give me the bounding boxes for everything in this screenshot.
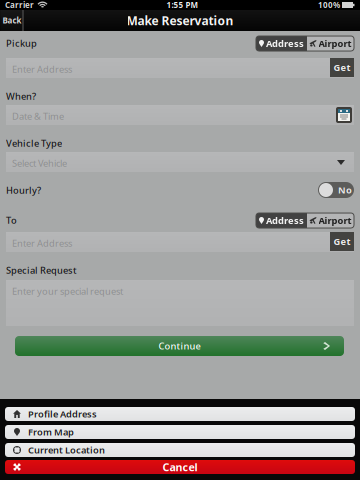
staticText: From Map (28, 426, 74, 438)
staticText: Carrier (5, 0, 34, 10)
staticText: Get (333, 61, 350, 74)
button[interactable]: Back (0, 10, 24, 31)
staticText: Address (266, 37, 304, 50)
staticText: Hourly? (6, 184, 41, 196)
staticText: Profile Address (28, 408, 97, 420)
button[interactable]: Select Vehicle (6, 152, 354, 172)
button[interactable]: Profile Address (5, 407, 355, 421)
staticText: Airport (318, 214, 351, 227)
staticText: Cancel (162, 460, 197, 474)
staticText: Get (333, 235, 350, 248)
staticText: When? (6, 90, 36, 102)
staticText: Select Vehicle (12, 157, 67, 169)
button[interactable]: Get (330, 232, 354, 251)
staticText: 1:55 PM (166, 0, 198, 10)
button[interactable]: Airport (307, 213, 354, 228)
button[interactable]: Continue (15, 336, 344, 356)
button[interactable]: Airport (307, 36, 354, 51)
staticText: Back (2, 15, 21, 26)
button[interactable]: Address (256, 36, 307, 51)
button[interactable]: Cancel (5, 460, 355, 474)
staticText: Pickup (6, 37, 37, 49)
staticText: Enter Address (12, 63, 72, 75)
staticText: Continue (158, 340, 200, 352)
button[interactable]: Get (330, 58, 354, 77)
button[interactable]: From Map (5, 425, 355, 439)
button[interactable]: No (318, 182, 354, 198)
staticText: Enter Address (12, 237, 72, 249)
staticText: Airport (318, 37, 351, 50)
staticText: To (6, 214, 17, 226)
staticText: Vehicle Type (6, 137, 62, 149)
staticText: Make Reservation (126, 12, 233, 28)
button[interactable]: Choose date and time (336, 107, 352, 123)
button[interactable]: Address (256, 213, 307, 228)
staticText: No (338, 184, 352, 196)
staticText: Date & Time (12, 110, 64, 122)
button[interactable]: Current Location (5, 443, 355, 457)
staticText: 100% (318, 0, 340, 10)
staticText: Enter your special request (12, 285, 123, 297)
staticText: Current Location (28, 444, 105, 456)
staticText: Special Request (6, 264, 77, 276)
staticText: Address (266, 214, 304, 227)
